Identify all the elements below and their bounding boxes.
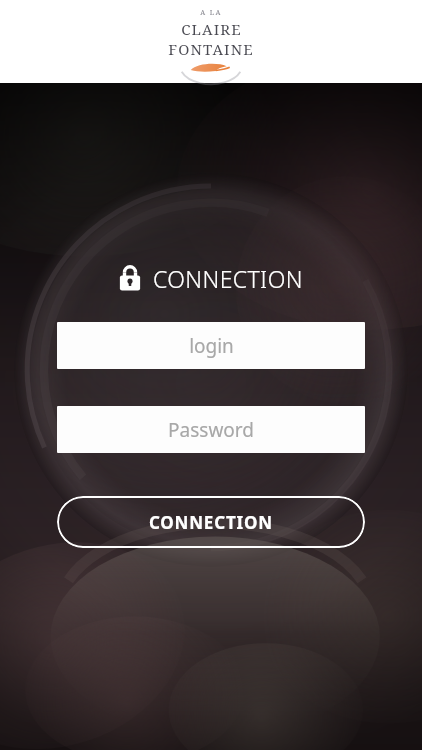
button[interactable]: A LA — [151, 2, 271, 82]
staticText: FONTAINE — [168, 39, 254, 59]
staticText: Password — [168, 417, 254, 443]
staticText: A LA — [200, 8, 222, 18]
staticText: CLAIRE — [181, 19, 242, 39]
staticText: login — [189, 333, 234, 359]
button[interactable]: CONNECTION — [57, 496, 365, 548]
button[interactable]: Password — [57, 406, 365, 453]
button[interactable]: login — [57, 322, 365, 369]
staticText: CONNECTION — [153, 263, 303, 294]
staticText: CONNECTION — [149, 511, 273, 534]
